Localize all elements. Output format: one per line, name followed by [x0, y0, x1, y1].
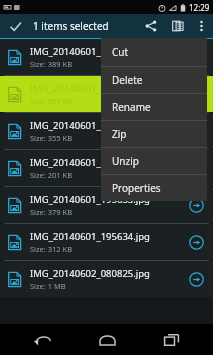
button[interactable]: Back — [20, 324, 64, 355]
button[interactable]: IMG_20140601_195634.jpg — [0, 224, 213, 260]
staticText: Unzip — [112, 154, 139, 168]
button[interactable]: More options — [191, 14, 211, 38]
staticText: Properties — [112, 181, 161, 195]
button[interactable]: Open details — [185, 83, 207, 105]
staticText: IMG_20140602_080825.jpg — [30, 267, 150, 280]
staticText: Delete — [112, 73, 143, 87]
button[interactable]: Open details — [185, 157, 207, 179]
staticText: Size: 1 MB — [30, 281, 66, 291]
button[interactable]: Open details — [185, 194, 207, 216]
button[interactable]: Open details — [185, 231, 207, 253]
button[interactable]: IMG_20140602_080825.jpg — [0, 261, 213, 297]
button[interactable]: Zip — [101, 121, 207, 147]
button[interactable]: Share — [137, 14, 165, 38]
staticText: IMG_20140601_193311.jpg — [30, 45, 150, 58]
staticText: Zip — [112, 127, 127, 141]
button[interactable]: IMG_20140601_195633.jpg — [0, 187, 213, 223]
staticText: IMG_20140601_195633.jpg — [30, 193, 150, 206]
staticText: IMG_20140601_194512.jpg — [30, 82, 150, 95]
button[interactable]: Open details — [185, 268, 207, 290]
staticText: Rename — [112, 100, 151, 114]
staticText: IMG_20140601_195122.jpg — [30, 156, 150, 169]
button[interactable]: Delete — [101, 67, 207, 93]
staticText: 12:29 — [189, 2, 210, 13]
button[interactable]: Rename — [101, 94, 207, 120]
button[interactable]: IMG_20140601_194905.jpg — [0, 113, 213, 149]
button[interactable]: Open details — [185, 120, 207, 142]
staticText: Size: 355 KB — [30, 133, 73, 143]
staticText: Cut — [112, 45, 129, 59]
button[interactable]: IMG_20140601_194512.jpg — [0, 76, 213, 112]
staticText: Size: 201 KB — [30, 170, 73, 180]
staticText: Size: 307 KB — [30, 96, 73, 106]
button[interactable]: Copy — [165, 14, 191, 38]
button[interactable]: IMG_20140601_195122.jpg — [0, 150, 213, 186]
button[interactable]: Unzip — [101, 148, 207, 174]
staticText: Size: 312 KB — [30, 244, 73, 254]
button[interactable]: Recents — [149, 324, 193, 355]
staticText: Size: 389 KB — [30, 59, 73, 69]
button[interactable]: Properties — [101, 175, 207, 201]
button[interactable]: Open details — [185, 46, 207, 68]
button[interactable]: Home — [85, 324, 129, 355]
staticText: 1 items selected — [33, 19, 109, 33]
staticText: IMG_20140601_194905.jpg — [30, 119, 150, 132]
button[interactable]: Done — [0, 14, 30, 38]
button[interactable]: IMG_20140601_193311.jpg — [0, 39, 213, 75]
button[interactable]: Cut — [101, 38, 207, 66]
staticText: Size: 379 KB — [30, 207, 73, 217]
staticText: IMG_20140601_195634.jpg — [30, 230, 150, 243]
